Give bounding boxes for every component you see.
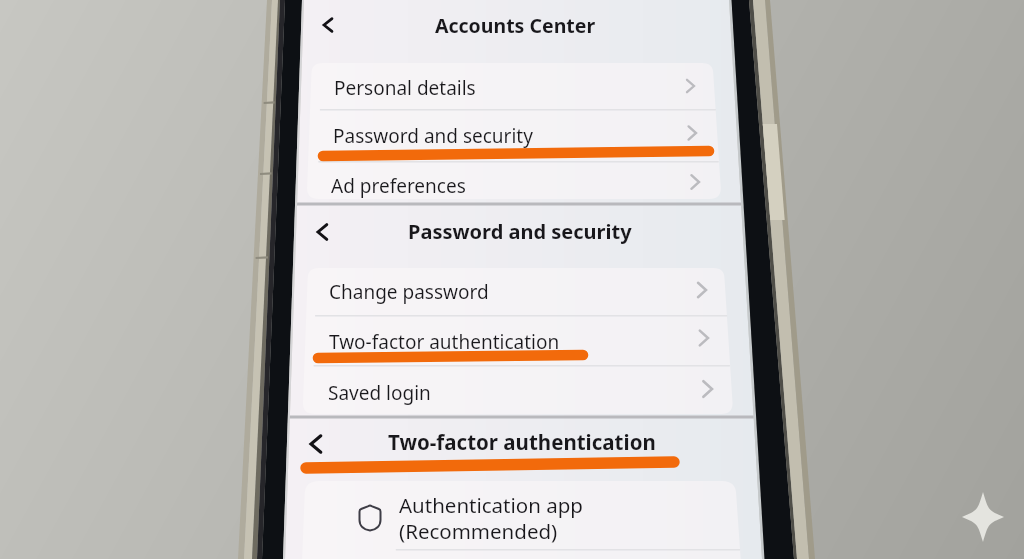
staticText: Accounts Center xyxy=(435,12,596,39)
staticText: Authentication app xyxy=(399,491,583,519)
button[interactable]: Authentication app xyxy=(302,481,742,549)
button[interactable]: Back xyxy=(304,212,338,252)
staticText: (Recommended) xyxy=(399,517,558,545)
button[interactable]: Back xyxy=(310,5,344,45)
staticText: Two-factor authentication xyxy=(329,329,560,355)
staticText: Saved login xyxy=(328,380,431,406)
staticText: Password and security xyxy=(333,123,533,149)
button[interactable]: Change password xyxy=(310,268,722,315)
button[interactable]: Password and security xyxy=(316,110,716,161)
staticText: Change password xyxy=(329,279,489,305)
button[interactable]: Personal details xyxy=(316,63,716,109)
staticText: Ad preferences xyxy=(331,173,466,199)
button[interactable]: Back xyxy=(297,424,333,466)
button[interactable]: Saved login xyxy=(309,366,721,414)
staticText: Two-factor authentication xyxy=(388,428,656,456)
button[interactable]: Two-factor authentication xyxy=(310,316,722,365)
button[interactable]: Ad preferences xyxy=(315,162,715,199)
staticText: Password and security xyxy=(408,218,632,245)
staticText: Personal details xyxy=(334,75,476,101)
